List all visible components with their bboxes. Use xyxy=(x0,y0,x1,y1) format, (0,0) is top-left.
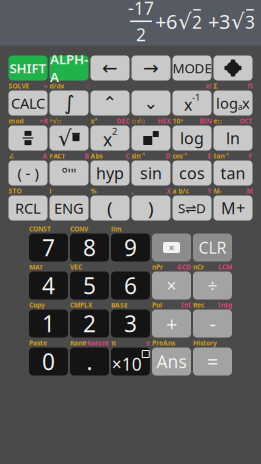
staticText: +3 xyxy=(203,8,230,35)
button[interactable]: tan xyxy=(213,160,252,185)
button[interactable]: = xyxy=(193,347,232,375)
button[interactable]: SHIFT xyxy=(8,55,47,80)
staticText: √ xyxy=(178,9,192,33)
staticText: MODE xyxy=(172,59,211,77)
staticText: FACT xyxy=(49,152,65,160)
button[interactable]: RCL xyxy=(8,195,47,220)
staticText: sin⁻¹ xyxy=(131,152,145,160)
button[interactable]: 3 xyxy=(111,309,150,337)
button[interactable]: x xyxy=(90,125,129,150)
staticText: log xyxy=(180,127,204,149)
button[interactable]: - xyxy=(193,309,232,337)
staticText: X xyxy=(166,187,170,195)
staticText: cos xyxy=(179,162,205,184)
button[interactable]: 9 xyxy=(111,233,150,261)
staticText: . xyxy=(86,346,92,376)
button[interactable]: Delete xyxy=(152,233,191,261)
button[interactable]: °'" xyxy=(49,160,88,185)
staticText: a b/c xyxy=(172,187,188,195)
button[interactable]: M+ xyxy=(213,195,252,220)
staticText: M xyxy=(246,187,252,195)
button[interactable]: ( - ) xyxy=(8,160,47,185)
staticText: F xyxy=(248,152,252,160)
staticText: ▫√▫ xyxy=(131,117,145,125)
button[interactable]: ENG xyxy=(49,195,88,220)
staticText: VEC xyxy=(70,263,82,271)
button[interactable]: ← xyxy=(90,55,129,80)
button[interactable]: Square root xyxy=(49,125,88,150)
staticText: 2 xyxy=(112,125,117,137)
staticText: CONV xyxy=(70,225,88,233)
button[interactable]: Fraction xyxy=(8,125,47,150)
button[interactable]: × xyxy=(152,271,191,299)
staticText: e xyxy=(146,339,150,347)
staticText: ALPHA xyxy=(50,50,88,86)
button[interactable]: Settings xyxy=(213,55,252,80)
staticText: mod xyxy=(8,117,23,125)
button[interactable]: → xyxy=(131,55,170,80)
button[interactable]: S⇌D xyxy=(172,195,211,220)
button[interactable]: ALPHA xyxy=(49,55,88,80)
staticText: E xyxy=(207,152,211,160)
staticText: Abs xyxy=(90,152,102,160)
button[interactable]: . xyxy=(70,347,109,375)
button[interactable]: ⌄ xyxy=(131,90,170,115)
staticText: Π xyxy=(247,82,252,90)
button[interactable]: MODE xyxy=(172,55,211,80)
staticText: HEX xyxy=(157,117,170,125)
staticText: 3 xyxy=(124,308,137,338)
staticText: - xyxy=(209,310,215,337)
button[interactable]: 6 xyxy=(111,271,150,299)
button[interactable]: ( xyxy=(90,195,129,220)
staticText: 2 xyxy=(83,308,96,338)
staticText: π xyxy=(111,339,116,347)
button[interactable]: 7 xyxy=(29,233,68,261)
button[interactable]: log xyxy=(213,90,252,115)
staticText: lim xyxy=(111,225,122,233)
staticText: DEC xyxy=(116,117,129,125)
button[interactable]: 2 xyxy=(70,309,109,337)
staticText: CONST xyxy=(29,225,51,233)
staticText: Σ xyxy=(213,82,217,90)
staticText: M- xyxy=(213,187,221,195)
button[interactable]: ⌃ xyxy=(90,90,129,115)
button[interactable]: ∫ xyxy=(49,90,88,115)
button[interactable]: sin xyxy=(131,160,170,185)
staticText: ( - ) xyxy=(17,163,38,183)
button[interactable]: ) xyxy=(131,195,170,220)
staticText: 6 xyxy=(124,270,137,300)
button[interactable]: 5 xyxy=(70,271,109,299)
button[interactable]: CLR xyxy=(193,233,232,261)
staticText: BASE xyxy=(111,301,128,309)
button[interactable]: ÷ xyxy=(193,271,232,299)
button[interactable]: 1 xyxy=(29,309,68,337)
button[interactable]: log xyxy=(172,125,211,150)
button[interactable]: Ans xyxy=(152,347,191,375)
button[interactable]: Times ten to the power xyxy=(111,347,150,375)
staticText: i xyxy=(49,187,51,195)
button[interactable]: ln xyxy=(213,125,252,150)
button[interactable]: cos xyxy=(172,160,211,185)
staticText: C xyxy=(125,152,129,160)
staticText: Int xyxy=(181,301,191,309)
staticText: CALC xyxy=(11,93,45,113)
staticText: S⇌D xyxy=(178,199,206,217)
staticText: Ans xyxy=(156,350,186,373)
staticText: = xyxy=(207,348,218,375)
button[interactable]: x xyxy=(172,90,211,115)
button[interactable]: 4 xyxy=(29,271,68,299)
staticText: ÷ xyxy=(207,274,217,297)
staticText: tan⁻¹ xyxy=(213,152,229,160)
button[interactable]: Power xyxy=(131,125,170,150)
button[interactable]: 8 xyxy=(70,233,109,261)
staticText: RCL xyxy=(15,198,41,218)
staticText: sin xyxy=(140,162,162,184)
staticText: ⁿ√▫ xyxy=(49,117,61,125)
staticText: LCM xyxy=(218,263,232,271)
staticText: x xyxy=(103,128,112,151)
button[interactable]: + xyxy=(152,309,191,337)
staticText: CLR xyxy=(198,237,226,258)
button[interactable]: hyp xyxy=(90,160,129,185)
button[interactable]: 0 xyxy=(29,347,68,375)
button[interactable]: CALC xyxy=(8,90,47,115)
